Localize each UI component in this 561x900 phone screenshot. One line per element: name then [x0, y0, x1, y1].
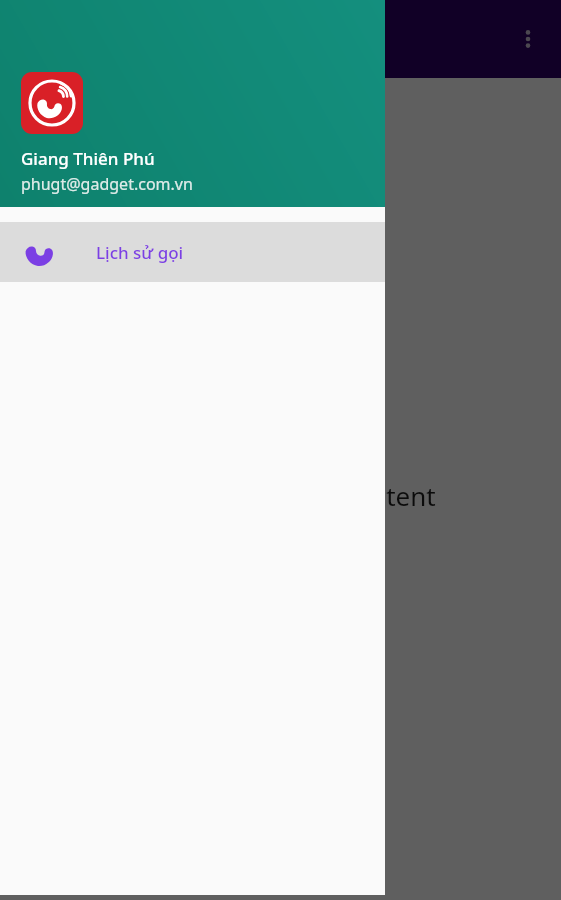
staticText: Giang Thiên Phú: [21, 147, 155, 170]
staticText: Lịch sử gọi: [96, 241, 184, 264]
staticText: phugt@gadget.com.vn: [21, 173, 193, 195]
staticText: Content: [338, 478, 436, 513]
button[interactable]: Lịch sử gọi: [0, 222, 385, 282]
button[interactable]: More options: [504, 15, 552, 63]
